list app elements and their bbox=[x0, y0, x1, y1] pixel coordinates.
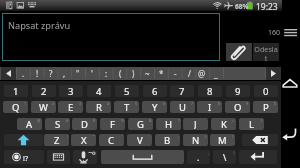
button[interactable]: 7 bbox=[170, 85, 194, 97]
staticText: . bbox=[197, 151, 200, 163]
button[interactable]: Back bbox=[281, 124, 300, 143]
staticText: Napsat zprávu bbox=[8, 19, 71, 32]
button[interactable]: 9 bbox=[226, 85, 250, 97]
staticText: - bbox=[174, 68, 177, 79]
staticText: 0 bbox=[263, 85, 269, 97]
button[interactable]: P bbox=[253, 101, 278, 113]
button[interactable]: Backspace bbox=[242, 134, 278, 146]
button[interactable]: H bbox=[156, 118, 181, 130]
button[interactable]: R bbox=[86, 101, 111, 113]
button[interactable]: Z bbox=[44, 134, 69, 146]
staticText: ! bbox=[67, 134, 68, 139]
button[interactable]: \ bbox=[213, 150, 236, 164]
button[interactable]: ? bbox=[44, 67, 58, 80]
button[interactable]: 0 bbox=[254, 85, 278, 97]
staticText: Odeslat bbox=[253, 44, 279, 62]
button[interactable]: Voice input bbox=[73, 150, 97, 164]
button[interactable]: K bbox=[211, 118, 236, 130]
button[interactable]: Menu bbox=[281, 24, 300, 43]
button[interactable]: Shift bbox=[4, 134, 43, 146]
staticText: / bbox=[188, 68, 191, 79]
button[interactable]: 2 bbox=[32, 85, 56, 97]
staticText: : bbox=[150, 134, 151, 139]
button[interactable]: / bbox=[182, 67, 196, 80]
button[interactable]: Attach bbox=[226, 43, 252, 61]
staticText: - bbox=[205, 118, 207, 123]
button[interactable]: . bbox=[16, 67, 30, 80]
button[interactable]: ) bbox=[126, 67, 140, 80]
button[interactable]: E bbox=[58, 101, 83, 113]
staticText: : bbox=[105, 68, 108, 79]
staticText: 9 bbox=[246, 101, 249, 106]
staticText: 1 bbox=[13, 85, 19, 97]
staticText: ! bbox=[36, 68, 39, 79]
button[interactable]: 6 bbox=[143, 85, 167, 97]
button[interactable]: Enter bbox=[239, 150, 277, 164]
staticText: 8 bbox=[218, 101, 221, 106]
button[interactable]: : bbox=[99, 67, 113, 80]
button[interactable]: O bbox=[225, 101, 250, 113]
button[interactable]: Q bbox=[3, 101, 28, 113]
staticText: C bbox=[108, 134, 115, 146]
button[interactable]: . bbox=[187, 150, 210, 164]
button[interactable]: C bbox=[99, 134, 124, 146]
button[interactable]: ! bbox=[30, 67, 44, 80]
button[interactable]: Input settings bbox=[47, 150, 70, 164]
staticText: ~ bbox=[145, 68, 150, 79]
button[interactable]: 5 bbox=[115, 85, 139, 97]
button[interactable]: N bbox=[183, 134, 208, 146]
button[interactable]: V bbox=[127, 134, 152, 146]
button[interactable]: G bbox=[128, 118, 153, 130]
button[interactable]: Odeslat bbox=[253, 43, 279, 61]
staticText: * bbox=[159, 68, 164, 79]
button[interactable]: * bbox=[154, 67, 168, 80]
button[interactable]: Change language bbox=[4, 150, 44, 164]
button[interactable]: L bbox=[239, 118, 264, 130]
button[interactable]: X bbox=[71, 134, 96, 146]
button[interactable]: , bbox=[57, 67, 71, 80]
button[interactable]: J bbox=[183, 118, 208, 130]
button[interactable]: ' bbox=[85, 67, 99, 80]
staticText: I bbox=[208, 101, 212, 113]
staticText: \ bbox=[223, 151, 227, 163]
button[interactable]: - bbox=[168, 67, 182, 80]
staticText: T bbox=[124, 101, 130, 113]
staticText: 2 bbox=[41, 85, 47, 97]
staticText: " bbox=[76, 68, 80, 79]
button[interactable]: " bbox=[71, 67, 85, 80]
button[interactable]: Y bbox=[142, 101, 167, 113]
staticText: ( bbox=[261, 118, 263, 123]
staticText: W bbox=[39, 101, 48, 113]
button[interactable]: M bbox=[210, 134, 235, 146]
button[interactable]: W bbox=[31, 101, 56, 113]
staticText: # bbox=[66, 118, 69, 123]
button[interactable]: F bbox=[100, 118, 125, 130]
button[interactable]: B bbox=[155, 134, 180, 146]
button[interactable]: 3 bbox=[59, 85, 83, 97]
staticText: _ bbox=[214, 68, 218, 79]
button[interactable]: S bbox=[45, 118, 70, 130]
button[interactable]: Next suggestions bbox=[266, 67, 281, 80]
button[interactable]: 8 bbox=[198, 85, 222, 97]
staticText: Y bbox=[152, 101, 158, 113]
button[interactable]: A bbox=[17, 118, 42, 130]
staticText: 9 bbox=[235, 85, 241, 97]
button[interactable]: Previous suggestions bbox=[1, 67, 16, 80]
button[interactable]: 1 bbox=[4, 85, 28, 97]
staticText: @ bbox=[198, 68, 206, 79]
button[interactable]: ( bbox=[113, 67, 127, 80]
button[interactable]: ~ bbox=[140, 67, 154, 80]
staticText: 0 bbox=[274, 101, 277, 106]
button[interactable]: Napsat zprávu bbox=[2, 13, 220, 61]
button[interactable]: Space bbox=[101, 150, 184, 164]
staticText: 68% bbox=[235, 2, 249, 11]
button[interactable]: I bbox=[197, 101, 222, 113]
button[interactable]: 4 bbox=[87, 85, 111, 97]
staticText: G bbox=[137, 118, 144, 130]
button[interactable]: Home bbox=[281, 74, 300, 93]
button[interactable]: U bbox=[170, 101, 195, 113]
button[interactable]: D bbox=[72, 118, 97, 130]
button[interactable]: @ bbox=[195, 67, 209, 80]
button[interactable]: _ bbox=[209, 67, 223, 80]
button[interactable]: T bbox=[114, 101, 139, 113]
